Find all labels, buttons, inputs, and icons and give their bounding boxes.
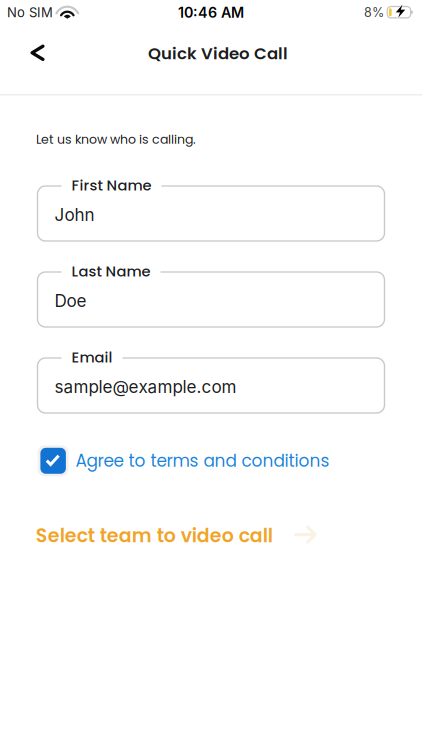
staticText: Let us know who is calling. <box>36 130 196 148</box>
button[interactable]: Agree to terms and conditions <box>37 445 335 477</box>
staticText: 10:46 AM <box>178 4 244 21</box>
staticText: 8% <box>364 5 384 20</box>
button[interactable]: sample@example.com <box>37 358 384 413</box>
button[interactable]: Doe <box>37 272 384 327</box>
staticText: Select team to video call <box>36 522 273 549</box>
staticText: No SIM <box>7 5 53 20</box>
staticText: Email <box>71 347 112 367</box>
staticText: Quick Video Call <box>148 42 288 65</box>
button[interactable]: Back <box>15 31 59 75</box>
staticText: John <box>54 204 94 225</box>
staticText: Last Name <box>71 261 150 281</box>
staticText: Doe <box>54 290 86 311</box>
button[interactable]: John <box>37 186 384 241</box>
button[interactable]: Select team to video call <box>36 522 316 549</box>
staticText: Agree to terms and conditions <box>75 449 329 473</box>
staticText: First Name <box>71 175 151 195</box>
staticText: sample@example.com <box>54 376 236 397</box>
